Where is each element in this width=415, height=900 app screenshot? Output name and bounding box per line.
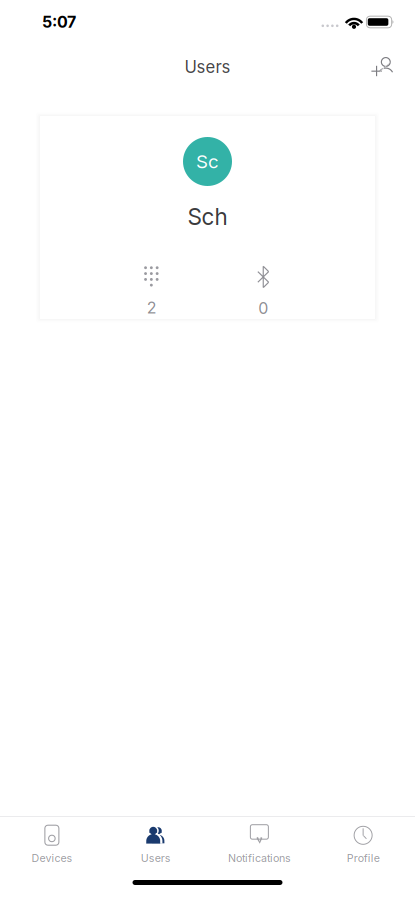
button[interactable]: Profile [311, 817, 415, 867]
staticText: 0 [258, 298, 268, 318]
staticText: Notifications [228, 852, 291, 865]
staticText: Users [184, 57, 230, 77]
button[interactable]: Devices [0, 817, 104, 867]
staticText: Sch [187, 203, 227, 230]
button[interactable]: Notifications [207, 817, 311, 867]
staticText: 2 [147, 298, 157, 317]
button[interactable]: Users [104, 817, 208, 867]
staticText: Sc [196, 150, 219, 173]
staticText: Users [141, 852, 171, 865]
staticText: Devices [31, 852, 72, 865]
staticText: Profile [347, 852, 380, 865]
staticText: 5:07 [42, 12, 76, 32]
button[interactable]: Add user [361, 45, 407, 89]
